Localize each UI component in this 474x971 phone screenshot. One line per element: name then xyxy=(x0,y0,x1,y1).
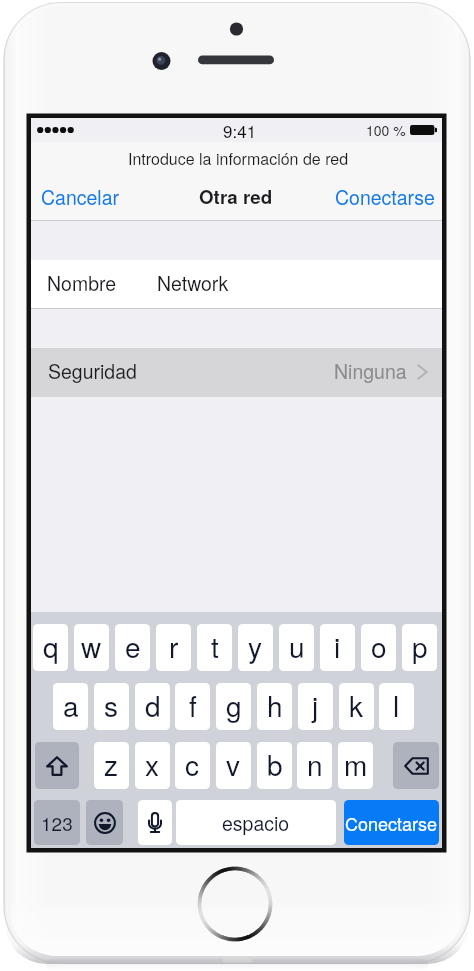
button[interactable]: m xyxy=(338,742,373,789)
staticText: g xyxy=(226,685,242,725)
staticText: 100 % xyxy=(366,120,406,140)
button[interactable]: z xyxy=(94,742,129,789)
staticText: q xyxy=(43,626,59,666)
button[interactable]: b xyxy=(257,742,292,789)
button[interactable]: s xyxy=(94,683,129,730)
staticText: y xyxy=(248,626,263,666)
button[interactable]: Conectarse xyxy=(344,800,439,845)
staticText: l xyxy=(393,685,400,725)
staticText: Cancelar xyxy=(41,183,120,211)
button[interactable]: k xyxy=(339,683,374,730)
staticText: b xyxy=(267,744,283,784)
button[interactable]: Dictate xyxy=(138,800,172,845)
staticText: 9:41 xyxy=(223,118,257,142)
button[interactable]: 123 xyxy=(34,800,80,845)
staticText: r xyxy=(169,626,179,666)
staticText: h xyxy=(267,685,283,725)
button[interactable]: i xyxy=(320,624,355,671)
staticText: u xyxy=(289,626,305,666)
button[interactable]: espacio xyxy=(176,800,336,845)
staticText: t xyxy=(211,626,219,666)
staticText: z xyxy=(104,744,119,784)
staticText: c xyxy=(185,744,200,784)
button[interactable]: v xyxy=(216,742,251,789)
staticText: v xyxy=(226,744,241,784)
button[interactable]: j xyxy=(298,683,333,730)
staticText: 123 xyxy=(41,809,73,836)
staticText: d xyxy=(145,685,161,725)
staticText: Network xyxy=(157,269,229,297)
staticText: a xyxy=(63,685,79,725)
button[interactable]: t xyxy=(197,624,232,671)
button[interactable]: o xyxy=(361,624,396,671)
button[interactable]: Emoji xyxy=(86,800,123,845)
staticText: Otra red xyxy=(199,183,273,210)
button[interactable]: n xyxy=(297,742,332,789)
button[interactable]: a xyxy=(53,683,88,730)
button[interactable]: l xyxy=(379,683,414,730)
button[interactable]: u xyxy=(279,624,314,671)
button[interactable]: x xyxy=(135,742,170,789)
staticText: o xyxy=(371,626,387,666)
button[interactable]: Conectarse xyxy=(325,176,442,218)
staticText: Conectarse xyxy=(345,810,438,836)
staticText: s xyxy=(104,685,119,725)
button[interactable]: r xyxy=(156,624,191,671)
staticText: j xyxy=(312,685,319,725)
staticText: Conectarse xyxy=(335,183,435,211)
staticText: Seguridad xyxy=(48,357,137,385)
button[interactable]: Seguridad xyxy=(31,348,442,397)
button[interactable]: Cancelar xyxy=(31,176,130,218)
button[interactable]: h xyxy=(257,683,292,730)
button[interactable]: y xyxy=(238,624,273,671)
staticText: Ninguna xyxy=(334,357,407,385)
staticText: k xyxy=(349,685,364,725)
staticText: e xyxy=(125,626,141,666)
button[interactable]: p xyxy=(402,624,437,671)
button[interactable]: Nombre xyxy=(31,260,442,309)
staticText: espacio xyxy=(222,809,290,837)
button[interactable]: d xyxy=(135,683,170,730)
staticText: f xyxy=(189,685,197,725)
staticText: x xyxy=(145,744,160,784)
button[interactable]: g xyxy=(216,683,251,730)
button[interactable]: c xyxy=(175,742,210,789)
staticText: i xyxy=(334,626,341,666)
button[interactable]: Backspace xyxy=(393,742,439,789)
staticText: Nombre xyxy=(47,269,117,297)
button[interactable]: w xyxy=(74,624,109,671)
staticText: p xyxy=(412,626,428,666)
button[interactable]: f xyxy=(175,683,210,730)
button[interactable]: q xyxy=(33,624,68,671)
button[interactable]: e xyxy=(115,624,150,671)
staticText: n xyxy=(307,744,323,784)
staticText: Introduce la información de red xyxy=(128,147,349,170)
staticText: w xyxy=(81,626,102,666)
staticText: m xyxy=(344,744,368,784)
button[interactable]: Shift xyxy=(35,742,79,789)
